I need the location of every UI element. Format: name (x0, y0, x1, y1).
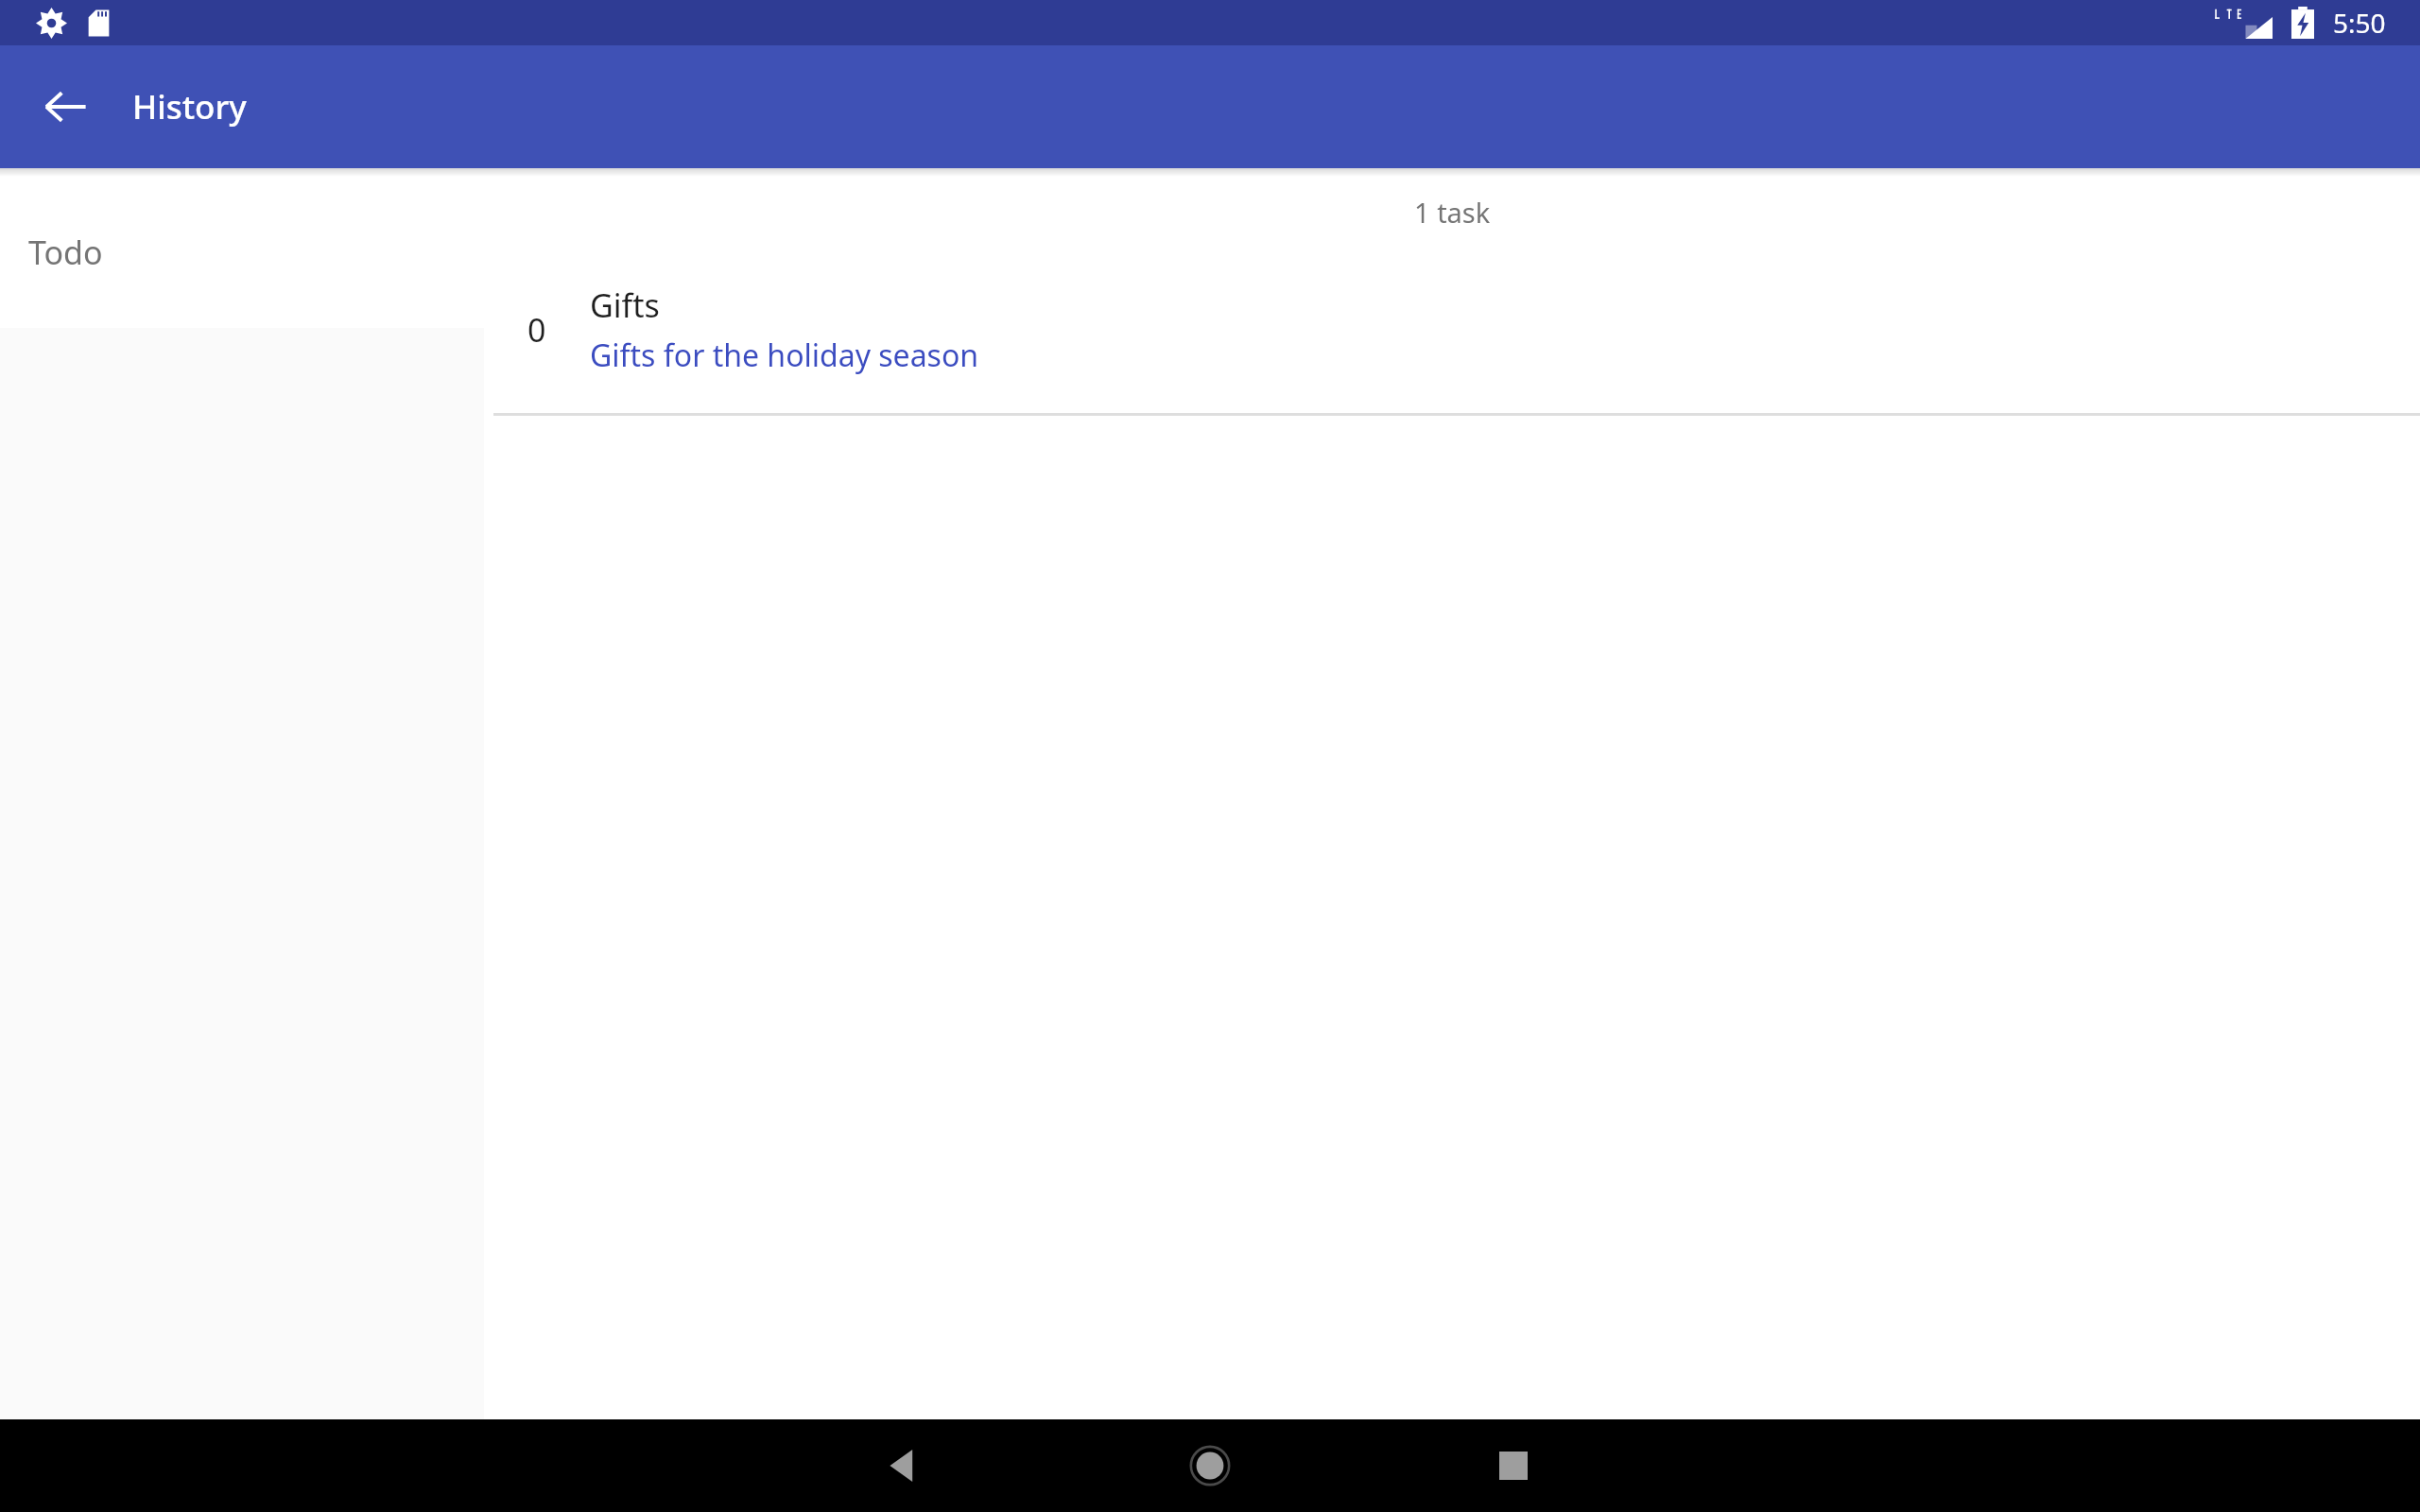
staticText: History (132, 84, 247, 129)
staticText: Gifts (590, 283, 660, 327)
staticText: 5:50 (2333, 5, 2386, 41)
button[interactable]: Navigate up (28, 70, 102, 144)
staticText: 1 task (1414, 194, 1491, 231)
staticText: Todo (28, 231, 103, 274)
button[interactable]: Home (1164, 1419, 1256, 1512)
button[interactable]: 0 (484, 247, 2420, 413)
button[interactable]: Recent apps (1467, 1419, 1560, 1512)
staticText: 0 (527, 308, 546, 352)
button[interactable]: Back (856, 1419, 949, 1512)
staticText: Gifts for the holiday season (590, 335, 979, 376)
button[interactable]: Todo (0, 177, 484, 328)
